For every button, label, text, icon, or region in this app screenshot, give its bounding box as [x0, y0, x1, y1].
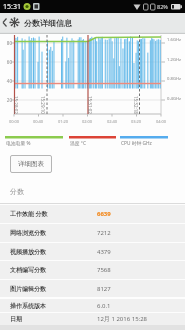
staticText: 01:20 [55, 119, 71, 124]
staticText: 视频播放分数 [10, 248, 46, 256]
staticText: 02:40 [104, 119, 120, 124]
staticText: 15:32:18 [133, 96, 139, 114]
staticText: 00:40 [30, 119, 46, 124]
staticText: 15:29:10 [40, 96, 46, 114]
button[interactable]: 分数详细信息 [0, 13, 185, 34]
staticText: 02:00 [79, 119, 95, 124]
button[interactable]: 日期 [0, 313, 185, 325]
staticText: 40 [0, 78, 12, 84]
staticText: 文档编写分数 [10, 266, 46, 274]
staticText: 8127 [97, 285, 111, 293]
staticText: 日期 [10, 315, 22, 323]
staticText: 0.4GHz [167, 96, 182, 102]
staticText: 03:20 [128, 119, 144, 124]
staticText: 1.6GHz [167, 37, 182, 43]
staticText: 82% [157, 3, 168, 10]
staticText: 网络浏览分数 [10, 229, 46, 237]
staticText: 04:00 [153, 119, 169, 124]
button[interactable]: 视频播放分数 [0, 243, 185, 260]
staticText: 操作系统版本 [10, 302, 46, 310]
staticText: 80 [0, 40, 12, 46]
staticText: 详细图表 [18, 160, 44, 168]
staticText: 00:00 [6, 119, 22, 124]
staticText: 工作效能 分数 [10, 210, 48, 218]
staticText: 6.0.1 [97, 302, 111, 310]
staticText: 15:28:02 [13, 96, 19, 114]
staticText: 0.8GHz [167, 76, 182, 82]
staticText: 电池电量 % [6, 140, 31, 147]
button[interactable]: 网络浏览分数 [0, 224, 185, 242]
button[interactable]: 文档编写分数 [0, 261, 185, 279]
staticText: 4379 [97, 248, 111, 256]
button[interactable]: 详细图表 [10, 155, 52, 173]
staticText: 分数 [10, 187, 24, 196]
staticText: 图片编辑分数 [10, 285, 46, 293]
staticText: 7568 [97, 266, 111, 274]
staticText: 7212 [97, 229, 111, 237]
staticText: 6639 [97, 210, 111, 218]
staticText: 15:31:02 [87, 96, 93, 114]
staticText: 15:31 [3, 2, 21, 12]
staticText: 60 [0, 59, 12, 65]
button[interactable]: 图片编辑分数 [0, 280, 185, 297]
staticText: 12月 1 2016 15:28 [97, 315, 148, 323]
button[interactable]: 工作效能 分数 [0, 205, 185, 223]
staticText: 1.2GHz [167, 57, 182, 63]
staticText: 温度 °C [70, 140, 86, 147]
button[interactable]: 操作系统版本 [0, 299, 185, 312]
staticText: 20 [0, 97, 12, 103]
staticText: CPU 时钟 GHz [121, 140, 152, 147]
staticText: 分数详细信息 [24, 18, 72, 28]
